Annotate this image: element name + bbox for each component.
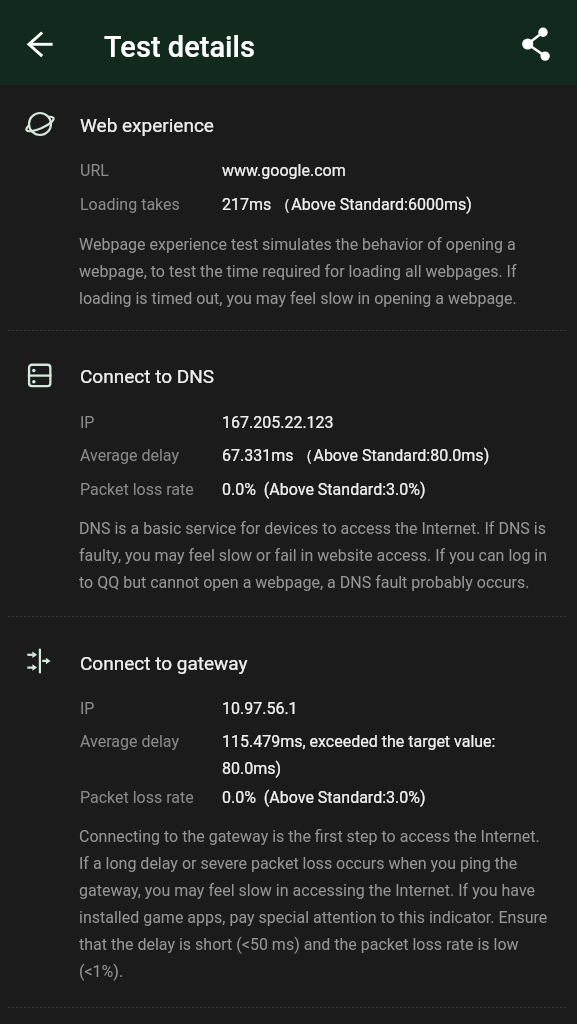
staticText: IP: [80, 413, 95, 432]
staticText: Packet loss rate: [80, 480, 194, 499]
staticText: 217ms （Above Standard:6000ms): [222, 195, 472, 215]
staticText: Web experience: [80, 114, 214, 136]
staticText: Packet loss rate: [80, 788, 194, 807]
staticText: Connect to gateway: [80, 652, 248, 674]
staticText: 0.0% (Above Standard:3.0%): [222, 480, 426, 499]
staticText: Webpage experience test simulates the be…: [79, 235, 551, 308]
staticText: Test details: [104, 30, 255, 64]
staticText: 10.97.56.1: [222, 699, 298, 718]
staticText: DNS is a basic service for devices to ac…: [79, 519, 551, 592]
staticText: Average delay: [80, 732, 179, 751]
staticText: Connect to DNS: [80, 365, 215, 387]
staticText: IP: [80, 699, 95, 718]
button[interactable]: Share: [509, 21, 557, 69]
staticText: 115.479ms, exceeded the target value: 80…: [222, 732, 551, 778]
staticText: www.google.com: [222, 161, 346, 180]
staticText: URL: [80, 161, 109, 180]
staticText: Average delay: [80, 446, 179, 465]
staticText: 67.331ms （Above Standard:80.0ms): [222, 446, 490, 466]
staticText: Connecting to the gateway is the first s…: [79, 827, 551, 981]
button[interactable]: Back: [16, 21, 64, 69]
staticText: 0.0% (Above Standard:3.0%): [222, 788, 426, 807]
staticText: Loading takes: [80, 195, 180, 214]
staticText: 167.205.22.123: [222, 413, 334, 432]
